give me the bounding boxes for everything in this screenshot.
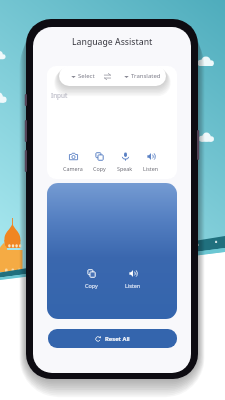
staticText: Listen bbox=[143, 165, 159, 172]
button[interactable]: Reset All bbox=[48, 329, 177, 348]
staticText: Camera bbox=[63, 165, 83, 172]
staticText: Copy bbox=[85, 282, 98, 289]
staticText: Listen bbox=[125, 282, 141, 289]
staticText: Select bbox=[78, 72, 95, 80]
staticText: Language Assistant bbox=[72, 36, 153, 48]
button[interactable]: Speak bbox=[112, 152, 138, 172]
staticText: Copy bbox=[93, 165, 106, 172]
button[interactable]: Listen bbox=[138, 152, 164, 172]
staticText: Reset All bbox=[105, 335, 130, 343]
staticText: Speak bbox=[117, 165, 133, 172]
button[interactable]: Listen bbox=[112, 269, 154, 289]
button[interactable]: Copy bbox=[86, 152, 112, 172]
button[interactable]: Select bbox=[71, 72, 95, 80]
staticText: Input bbox=[51, 91, 68, 100]
button[interactable]: Swap languages bbox=[101, 66, 113, 86]
button[interactable]: Translated bbox=[124, 72, 161, 80]
button[interactable]: Camera bbox=[60, 152, 86, 172]
staticText: Translated bbox=[131, 72, 161, 80]
button[interactable]: Copy bbox=[70, 269, 112, 289]
